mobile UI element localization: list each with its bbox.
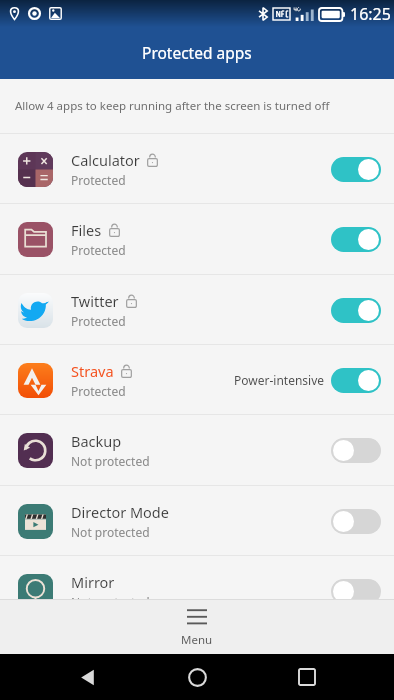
staticText: Protected (71, 172, 126, 188)
button[interactable]: Back (64, 654, 110, 700)
button[interactable]: Recents (284, 654, 330, 700)
button[interactable]: Backup (0, 414, 394, 485)
staticText: Calculator (71, 150, 140, 170)
staticText: 16:25 (350, 3, 391, 25)
staticText: Not protected (71, 524, 150, 540)
staticText: Menu (181, 632, 213, 648)
button[interactable]: Director Mode (0, 485, 394, 556)
staticText: Protected (71, 383, 126, 399)
staticText: Not protected (71, 594, 150, 599)
button[interactable]: Strava (0, 344, 394, 415)
staticText: Director Mode (71, 502, 169, 522)
staticText: Strava (71, 361, 114, 381)
staticText: Allow 4 apps to keep running after the s… (15, 98, 330, 114)
button[interactable]: Calculator (0, 133, 394, 204)
button[interactable]: Protected on (331, 366, 381, 394)
button[interactable]: Protected on (331, 296, 381, 324)
staticText: Protected (71, 242, 126, 258)
button[interactable]: Protected off (331, 436, 381, 464)
staticText: Files (71, 220, 102, 240)
button[interactable]: Mirror (0, 555, 394, 599)
button[interactable]: Protected on (331, 225, 381, 253)
staticText: Not protected (71, 453, 150, 469)
staticText: Backup (71, 431, 122, 451)
staticText: Protected apps (142, 42, 252, 63)
staticText: Mirror (71, 572, 115, 592)
button[interactable]: Files (0, 203, 394, 274)
button[interactable]: Protected off (331, 577, 381, 599)
button[interactable]: Home (174, 654, 220, 700)
staticText: Protected (71, 313, 126, 329)
button[interactable]: Menu (0, 599, 394, 654)
button[interactable]: Protected off (331, 507, 381, 535)
staticText: Power-intensive (234, 372, 325, 388)
button[interactable]: Protected on (331, 155, 381, 183)
button[interactable]: Twitter (0, 274, 394, 345)
staticText: Twitter (71, 291, 119, 311)
